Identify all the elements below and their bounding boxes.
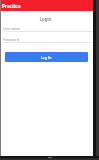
staticText: Practica: [2, 3, 21, 9]
button[interactable]: Practica: [0, 0, 93, 11]
other: Scroll bar: [93, 0, 99, 160]
staticText: Username: [3, 26, 21, 31]
staticText: Login: [0, 16, 92, 22]
staticText: Log In: [41, 55, 52, 60]
button[interactable]: Log In: [5, 52, 88, 62]
button[interactable]: Username: [0, 25, 93, 32]
staticText: Password: [3, 37, 19, 42]
button[interactable]: Password: [0, 36, 93, 43]
